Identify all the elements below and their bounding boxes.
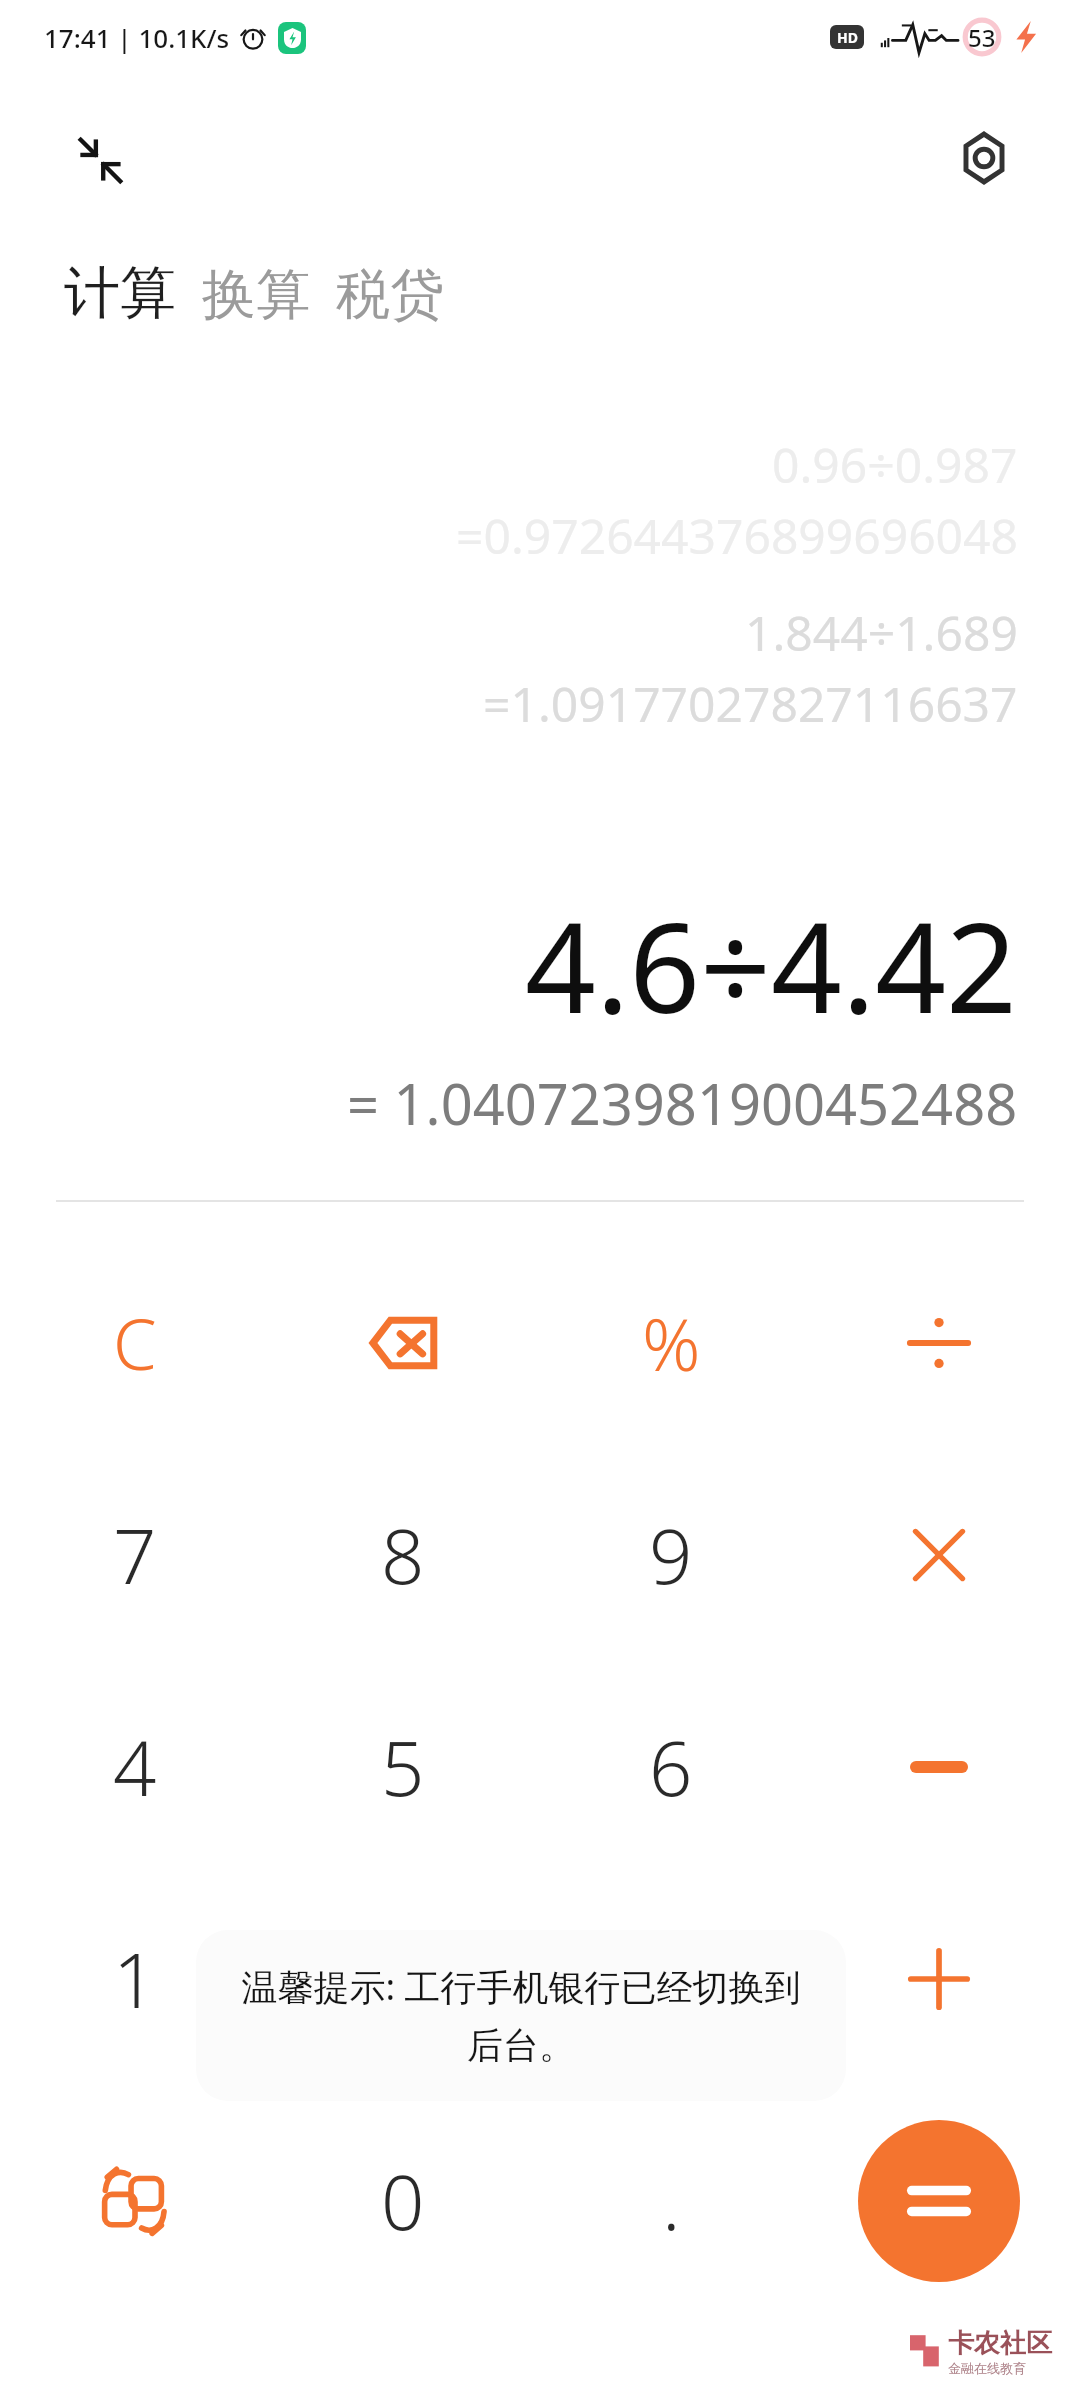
button[interactable]: Multiply (804, 1452, 1074, 1657)
button[interactable]: Backspace (268, 1240, 538, 1445)
button[interactable]: . (536, 2098, 806, 2303)
staticText: 4 (113, 1715, 157, 1819)
staticText: 17:41 | 10.1K/s (44, 20, 230, 55)
staticText: 计算 (64, 258, 176, 329)
button[interactable]: 换算 (202, 261, 310, 329)
button[interactable]: 2 (268, 1876, 538, 2081)
button[interactable]: 3 (536, 1876, 806, 2081)
button[interactable]: Equals (858, 2120, 1020, 2282)
staticText: . (662, 2149, 681, 2253)
staticText: 1 (113, 1927, 157, 2031)
staticText: C (113, 1295, 157, 1390)
button[interactable]: 6 (536, 1664, 806, 1869)
staticText: 53 (968, 21, 996, 54)
button[interactable]: Plus (804, 1876, 1074, 2081)
button[interactable]: 4 (0, 1664, 270, 1869)
staticText: 金融在线教育 (948, 2360, 1026, 2376)
button[interactable]: % (536, 1240, 806, 1445)
staticText: 0 (381, 2149, 425, 2253)
staticText: 税贷 (336, 261, 444, 329)
staticText: 6 (649, 1715, 693, 1819)
staticText: =0.972644376899696048 (456, 503, 1018, 568)
staticText: 8 (381, 1503, 425, 1607)
button[interactable]: 1 (0, 1876, 270, 2081)
button[interactable]: 5 (268, 1664, 538, 1869)
button[interactable]: Divide (804, 1240, 1074, 1445)
staticText: 0.96÷0.987 (772, 432, 1018, 497)
staticText: = 1.040723981900452488 (347, 1065, 1018, 1141)
staticText: =1.09177027827116637 (483, 671, 1018, 736)
staticText: 7 (113, 1503, 157, 1607)
button[interactable]: 0 (268, 2098, 538, 2303)
button[interactable]: Minus (804, 1664, 1074, 1869)
button[interactable]: C (0, 1240, 270, 1445)
staticText: 换算 (202, 261, 310, 329)
staticText: % (642, 1294, 701, 1392)
staticText: 卡农社区 (948, 2327, 1052, 2360)
staticText: 4.6÷4.42 (525, 880, 1018, 1049)
button[interactable]: Settings (944, 118, 1024, 198)
staticText: 5 (381, 1715, 425, 1819)
button[interactable]: 计算 (64, 258, 176, 329)
staticText: 1.844÷1.689 (745, 600, 1018, 665)
button[interactable]: 9 (536, 1452, 806, 1657)
button[interactable]: 7 (0, 1452, 270, 1657)
staticText: HD (837, 28, 858, 47)
staticText: 9 (649, 1503, 693, 1607)
button[interactable]: 8 (268, 1452, 538, 1657)
staticText: 2 (381, 1927, 425, 2031)
staticText: 温馨提示: 工行手机银行已经切换到后台。 (236, 1962, 806, 2069)
button[interactable]: Unit converter (0, 2098, 270, 2303)
staticText: 3 (649, 1927, 693, 2031)
button[interactable]: Collapse (62, 122, 138, 198)
button[interactable]: 税贷 (336, 261, 444, 329)
